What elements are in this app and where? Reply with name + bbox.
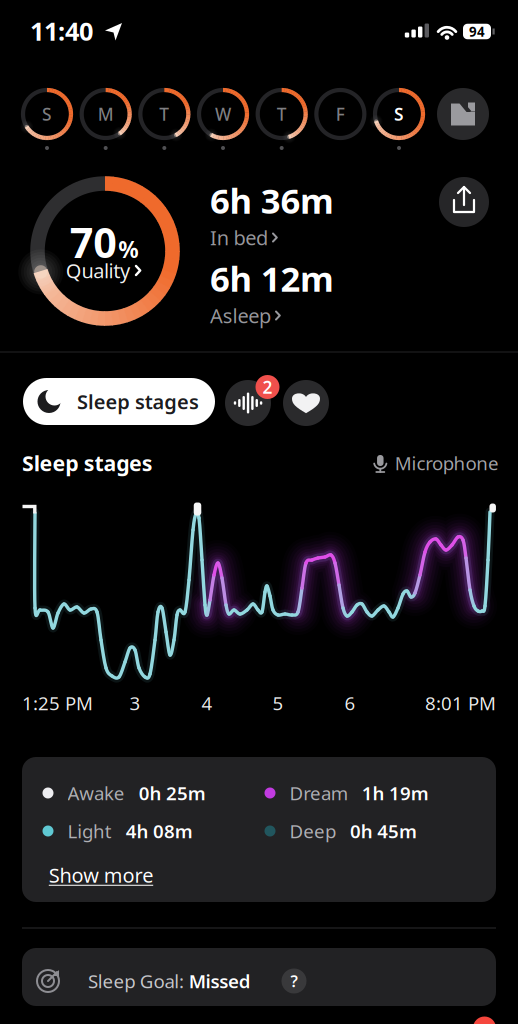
button[interactable]: Sleep stages — [23, 378, 215, 425]
staticText: Sleep Goal: — [88, 969, 189, 993]
button[interactable]: Show more — [49, 862, 153, 888]
staticText: 1h 19m — [362, 781, 429, 805]
button[interactable]: Sleep quality 70 percent — [34, 181, 174, 321]
staticText: Deep — [289, 819, 336, 843]
staticText: Microphone — [395, 451, 499, 475]
staticText: M — [98, 102, 114, 125]
staticText: 94 — [469, 23, 485, 40]
button[interactable]: S day — [371, 86, 427, 142]
staticText: T — [277, 102, 287, 125]
staticText: % — [118, 234, 138, 264]
staticText: 6h 36m — [210, 177, 334, 223]
staticText: Show more — [49, 862, 153, 888]
button[interactable]: Sleep sounds, 2 new — [225, 380, 271, 426]
button[interactable]: Asleep 6 hours 12 minutes — [210, 255, 390, 329]
staticText: F — [336, 102, 345, 125]
staticText: S — [42, 102, 52, 125]
button[interactable]: S day — [19, 86, 75, 142]
button[interactable]: F day — [312, 86, 368, 142]
staticText: 0h 45m — [350, 819, 417, 843]
button[interactable]: M day — [78, 86, 134, 142]
staticText: 4 — [201, 691, 212, 715]
button[interactable]: Share — [439, 177, 489, 227]
button[interactable]: Heart rate — [283, 380, 329, 426]
staticText: 2 — [262, 375, 272, 398]
staticText: 8:01 PM — [425, 691, 496, 715]
staticText: 11:40 — [30, 14, 93, 48]
staticText: 5 — [272, 691, 283, 715]
staticText: Asleep — [210, 302, 271, 329]
button[interactable]: Microphone — [319, 451, 499, 475]
staticText: 1:25 PM — [22, 691, 93, 715]
button[interactable]: Sleep Goal: Missed — [22, 948, 496, 1006]
button[interactable]: In bed 6 hours 36 minutes — [210, 177, 390, 251]
staticText: ? — [290, 970, 297, 992]
staticText: In bed — [210, 224, 268, 251]
button[interactable]: Archive — [437, 88, 489, 140]
button[interactable]: T day — [136, 86, 192, 142]
staticText: 4h 08m — [126, 819, 193, 843]
staticText: 70 — [70, 215, 117, 269]
staticText: S — [394, 102, 404, 125]
staticText: W — [215, 102, 231, 125]
staticText: Light — [67, 819, 112, 843]
staticText: Awake — [67, 781, 125, 805]
staticText: 0h 25m — [139, 781, 206, 805]
staticText: Dream — [289, 781, 348, 805]
staticText: 6h 12m — [210, 255, 334, 301]
staticText: T — [159, 102, 169, 125]
button[interactable]: W day — [195, 86, 251, 142]
staticText: 3 — [129, 691, 140, 715]
staticText: Sleep stages — [77, 388, 199, 415]
staticText: Missed — [189, 969, 251, 993]
button[interactable]: T day — [254, 86, 310, 142]
staticText: 6 — [344, 691, 355, 715]
staticText: Quality — [66, 257, 130, 284]
staticText: Sleep stages — [22, 449, 153, 477]
